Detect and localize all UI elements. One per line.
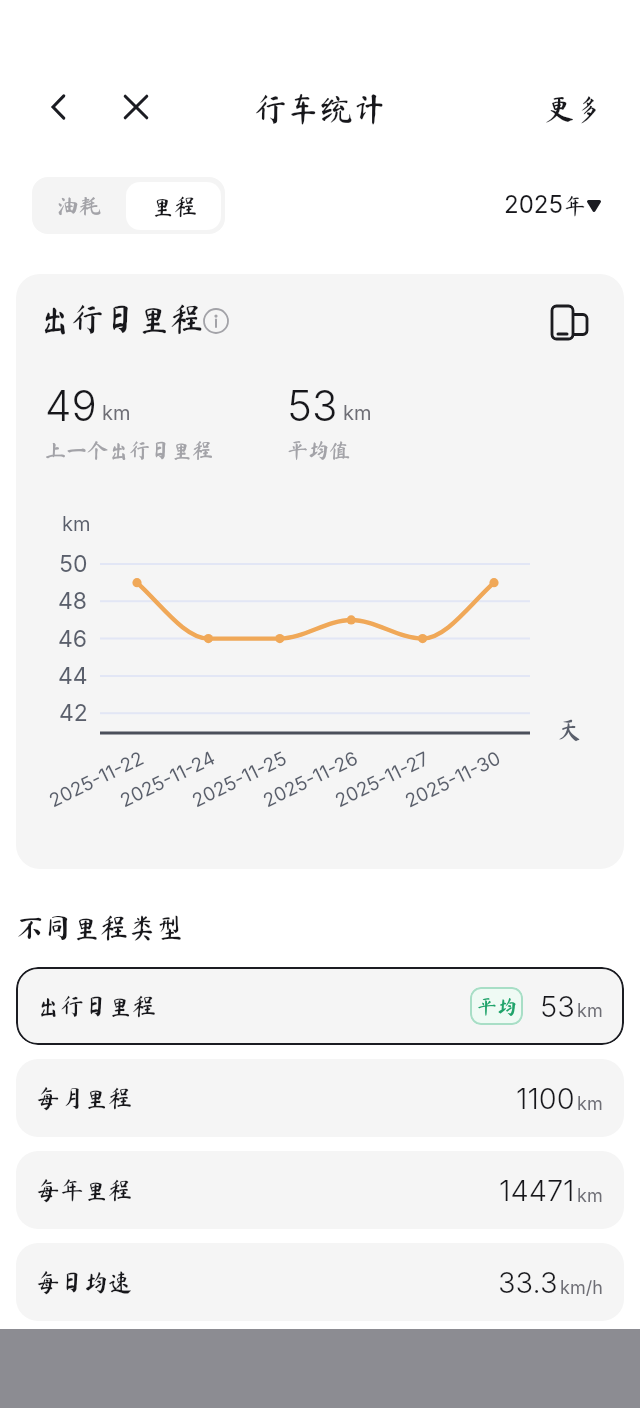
button[interactable]: 更多	[528, 78, 620, 138]
staticText: 行车统计	[254, 92, 386, 125]
staticText: 上一个出行日里程	[45, 440, 213, 461]
staticText: 油耗	[57, 195, 102, 217]
staticText: km	[577, 1185, 603, 1207]
staticText: km	[577, 1093, 603, 1115]
staticText: 42	[59, 699, 88, 727]
staticText: 年	[564, 195, 587, 217]
staticText: 50	[59, 550, 88, 578]
staticText: 不同里程类型	[16, 913, 185, 941]
staticText: km	[102, 401, 131, 425]
staticText: 里程	[151, 195, 197, 218]
staticText: 平均值	[287, 440, 350, 461]
staticText: km	[62, 512, 91, 536]
staticText: 1100	[516, 1081, 575, 1116]
staticText: 49	[45, 380, 97, 431]
button[interactable]: Back	[35, 83, 83, 131]
staticText: 出行日里程	[38, 302, 203, 335]
other: Info	[202, 307, 229, 334]
staticText: km	[577, 1000, 603, 1022]
staticText: 天	[556, 716, 583, 742]
staticText: 2025-11-25	[188, 746, 291, 812]
button[interactable]: Close	[112, 83, 160, 131]
staticText: 2025-11-27	[331, 747, 433, 812]
staticText: km	[343, 401, 372, 425]
staticText: 2025-11-22	[45, 746, 148, 812]
staticText: 出行日里程	[36, 994, 156, 1018]
staticText: 53	[287, 380, 338, 431]
button[interactable]: 2025	[504, 177, 601, 234]
staticText: 2025-11-24	[116, 746, 219, 812]
staticText: km/h	[560, 1277, 603, 1299]
button[interactable]: 每日均速	[16, 1243, 624, 1321]
staticText: 44	[58, 662, 88, 690]
staticText: 48	[58, 587, 88, 615]
staticText: 33.3	[498, 1265, 558, 1300]
staticText: 2025	[504, 190, 564, 219]
button[interactable]: 每月里程	[16, 1059, 624, 1137]
staticText: 每年里程	[36, 1178, 132, 1202]
staticText: 每月里程	[36, 1086, 132, 1110]
staticText: 更多	[545, 94, 604, 123]
staticText: 2025-11-26	[259, 746, 362, 812]
button[interactable]: 出行日里程	[16, 967, 624, 1045]
button[interactable]: Split screen	[540, 293, 600, 353]
button[interactable]: 油耗	[32, 177, 126, 234]
staticText: 2025-11-30	[401, 746, 505, 813]
button[interactable]: 里程	[126, 182, 221, 230]
staticText: 每日均速	[36, 1270, 132, 1294]
button[interactable]: 每年里程	[16, 1151, 624, 1229]
staticText: 14471	[499, 1173, 575, 1208]
staticText: 53	[540, 989, 575, 1024]
staticText: 46	[58, 625, 88, 653]
staticText: 平均	[477, 996, 517, 1016]
